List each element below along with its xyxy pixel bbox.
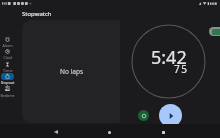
staticText: Timer bbox=[3, 68, 13, 73]
button[interactable]: Stopwatch bbox=[0, 73, 15, 89]
staticText: Stopwatch bbox=[22, 10, 52, 18]
button[interactable]: Recents bbox=[155, 125, 172, 138]
staticText: No laps bbox=[60, 67, 83, 76]
button[interactable]: Clock bbox=[0, 48, 15, 60]
staticText: 75 bbox=[174, 62, 189, 76]
button[interactable]: Reset bbox=[138, 110, 149, 121]
staticText: 5:42 bbox=[151, 45, 187, 70]
button[interactable]: Start bbox=[159, 104, 182, 127]
staticText: Bedtime bbox=[0, 93, 15, 98]
button[interactable]: Home bbox=[101, 125, 118, 138]
button[interactable]: Back bbox=[47, 125, 64, 138]
staticText: Alarm bbox=[2, 43, 13, 48]
button[interactable]: Timer bbox=[0, 61, 15, 73]
button[interactable]: Alarm bbox=[0, 36, 15, 48]
button[interactable]: Lap bbox=[212, 29, 220, 35]
staticText: Clock bbox=[3, 55, 13, 60]
button[interactable]: Bedtime bbox=[0, 86, 15, 98]
staticText: Stopwatch bbox=[0, 80, 15, 89]
